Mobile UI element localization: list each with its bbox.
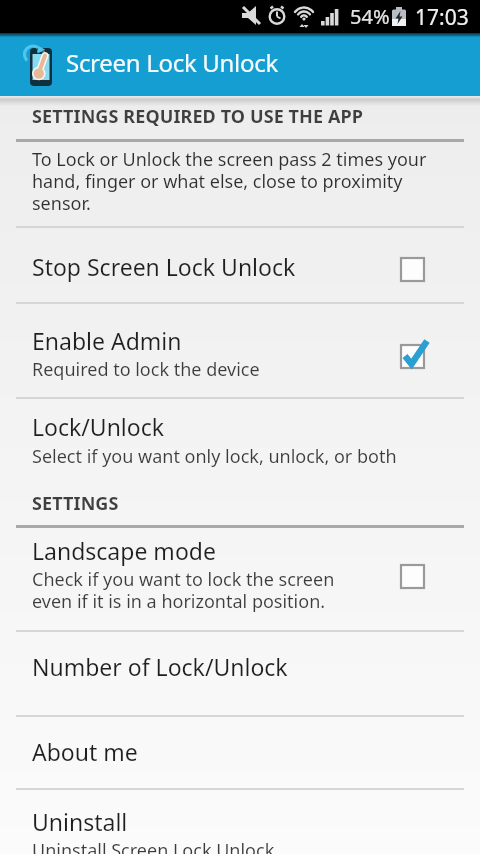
- button[interactable]: Landscape mode: [0, 527, 480, 630]
- button[interactable]: About me: [0, 717, 480, 788]
- staticText: 17:03: [415, 3, 469, 32]
- button[interactable]: Uninstall: [0, 790, 480, 854]
- button[interactable]: Number of Lock/Unlock: [0, 632, 480, 715]
- staticText: Stop Screen Lock Unlock: [32, 251, 296, 282]
- staticText: SETTINGS REQUIRED TO USE THE APP: [32, 104, 364, 129]
- staticText: Uninstall: [32, 806, 128, 837]
- button[interactable]: Lock/Unlock: [0, 399, 480, 489]
- staticText: Screen Lock Unlock: [66, 46, 278, 79]
- staticText: Lock/Unlock: [32, 411, 165, 442]
- staticText: Number of Lock/Unlock: [32, 651, 288, 682]
- staticText: Select if you want only lock, unlock, or…: [32, 444, 397, 469]
- staticText: To Lock or Unlock the screen pass 2 time…: [32, 147, 452, 216]
- staticText: Check if you want to lock the screen eve…: [32, 567, 335, 614]
- staticText: About me: [32, 736, 138, 767]
- button[interactable]: Enable Admin: [0, 304, 480, 397]
- staticText: SETTINGS: [32, 491, 119, 516]
- staticText: Landscape mode: [32, 535, 216, 566]
- staticText: Required to lock the device: [32, 357, 260, 382]
- staticText: 54%: [350, 3, 390, 30]
- button[interactable]: Stop Screen Lock Unlock: [0, 228, 480, 302]
- staticText: Uninstall Screen Lock Unlock: [32, 838, 275, 854]
- staticText: Enable Admin: [32, 325, 182, 356]
